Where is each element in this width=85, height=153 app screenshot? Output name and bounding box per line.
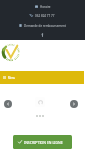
button[interactable]: 062 824 77 77 (30, 12, 55, 19)
button[interactable]: Horaire (35, 3, 51, 10)
staticText: Menu (8, 76, 16, 80)
button[interactable]: Facebook (41, 33, 44, 37)
button[interactable]: Menu (0, 71, 84, 84)
button[interactable]: Previous slide (4, 100, 12, 108)
staticText: Demande de remboursement (24, 24, 66, 28)
staticText: Horaire (40, 5, 51, 9)
staticText: 062 824 77 77 (35, 14, 55, 18)
staticText: INSCRIPTION EN LIGNE (24, 140, 63, 145)
button[interactable]: INSCRIPTION EN LIGNE (13, 135, 72, 149)
button[interactable]: Next slide (70, 100, 78, 108)
button[interactable]: Demande de remboursement (19, 22, 66, 29)
